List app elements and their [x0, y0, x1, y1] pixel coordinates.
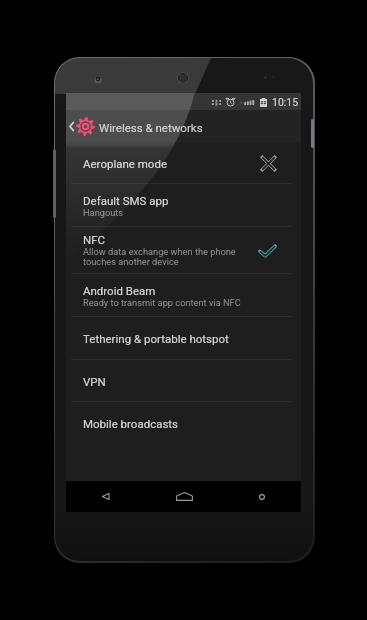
staticText: Tethering & portable hotspot: [83, 332, 229, 345]
button[interactable]: Home: [158, 481, 210, 512]
staticText: VPN: [83, 375, 106, 388]
staticText: 10:15: [272, 96, 299, 108]
button[interactable]: Recent apps: [236, 481, 288, 512]
button[interactable]: Default SMS app: [66, 184, 301, 227]
staticText: Hangouts: [83, 207, 124, 218]
staticText: Ready to transmit app content via NFC: [83, 297, 241, 308]
button[interactable]: Back: [79, 481, 131, 512]
button[interactable]: Tethering & portable hotspot: [66, 317, 301, 360]
button[interactable]: VPN: [66, 360, 301, 402]
staticText: Aeroplane mode: [83, 157, 167, 170]
staticText: Android Beam: [83, 284, 156, 297]
button[interactable]: Android Beam: [66, 274, 301, 317]
staticText: Allow data exchange when the phone touch…: [83, 246, 236, 268]
button[interactable]: Navigate up to Settings: [66, 110, 98, 142]
button[interactable]: NFC: [66, 227, 301, 274]
button[interactable]: Aeroplane mode: [66, 142, 301, 184]
staticText: Default SMS app: [83, 194, 169, 207]
staticText: Wireless & networks: [99, 121, 203, 134]
staticText: NFC: [83, 233, 106, 246]
staticText: Mobile broadcasts: [83, 417, 179, 430]
button[interactable]: Mobile broadcasts: [66, 402, 301, 444]
